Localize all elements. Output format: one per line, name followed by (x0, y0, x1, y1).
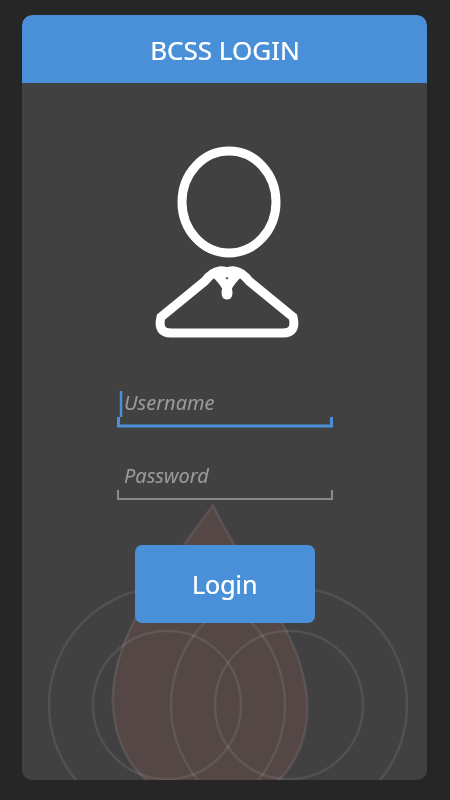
other: User avatar (135, 146, 319, 338)
staticText: BCSS LOGIN (150, 32, 300, 67)
button[interactable]: Password (117, 460, 333, 502)
button[interactable]: Login (135, 545, 315, 623)
staticText: Username (124, 389, 215, 416)
button[interactable]: Username (117, 387, 333, 429)
staticText: Login (192, 567, 258, 601)
staticText: Password (124, 462, 209, 489)
